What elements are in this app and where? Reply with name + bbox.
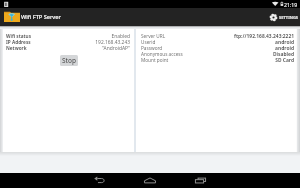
button[interactable]: Password — [141, 45, 294, 51]
staticText: android — [275, 45, 294, 51]
button[interactable]: Back — [81, 173, 118, 188]
button[interactable]: Anonymous access — [141, 51, 294, 57]
staticText: Wifi status — [6, 33, 31, 39]
button[interactable]: IP Address — [6, 39, 130, 45]
button[interactable]: Server URL — [141, 33, 294, 39]
staticText: Wifi FTP Server — [21, 13, 61, 21]
staticText: Anonymous access — [141, 51, 183, 57]
staticText: Mount point — [141, 57, 169, 63]
staticText: 21:19 — [284, 1, 298, 8]
button[interactable]: SETTINGS — [265, 8, 300, 26]
staticText: ftp://192.168.43.243:2221 — [234, 33, 294, 39]
button[interactable]: Network — [6, 45, 130, 51]
staticText: SD Card — [275, 57, 294, 63]
button[interactable]: Userid — [141, 39, 294, 45]
staticText: 192.168.43.243 — [95, 39, 130, 45]
staticText: SETTINGS — [279, 15, 299, 20]
button[interactable]: Recent apps — [182, 173, 219, 188]
button[interactable]: Stop — [60, 55, 78, 66]
button[interactable]: Home — [131, 173, 169, 188]
staticText: Network — [6, 45, 27, 51]
staticText: Stop — [62, 56, 77, 65]
staticText: Disabled — [273, 51, 294, 57]
button[interactable]: Mount point — [141, 57, 294, 63]
staticText: Userid — [141, 39, 156, 45]
staticText: Password — [141, 45, 163, 51]
staticText: Server URL — [141, 33, 166, 39]
staticText: Enabled — [111, 33, 130, 39]
button[interactable]: Wifi status — [6, 33, 130, 39]
staticText: IP Address — [6, 39, 31, 45]
staticText: "AndroidAP" — [101, 45, 130, 51]
staticText: android — [275, 39, 294, 45]
button[interactable]: Wifi FTP Server — [0, 8, 61, 26]
